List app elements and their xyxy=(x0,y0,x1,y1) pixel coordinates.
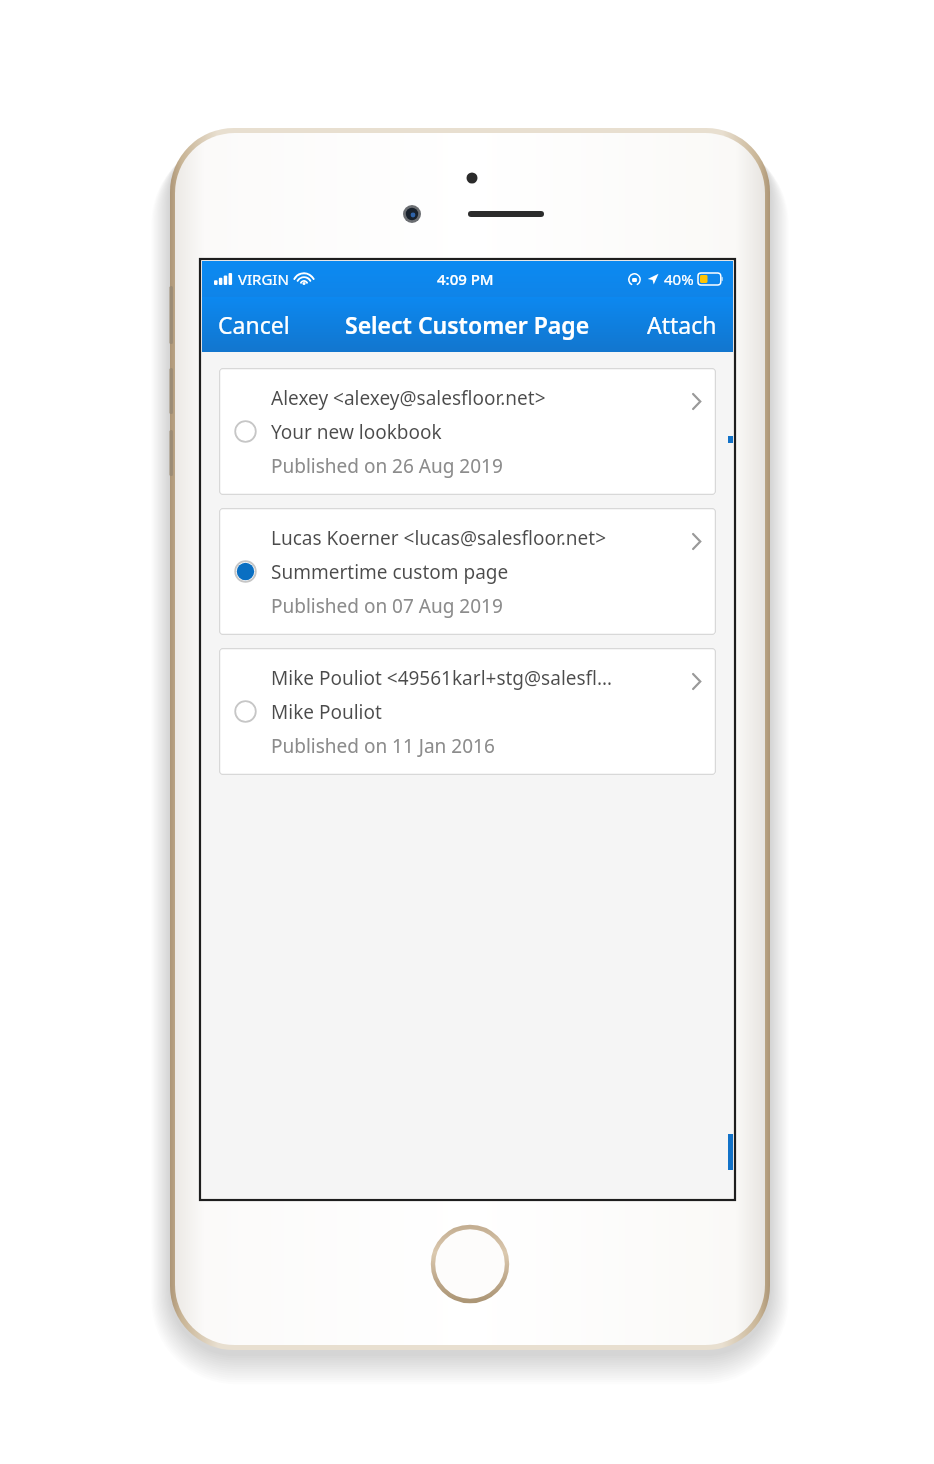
staticText: Published on 11 Jan 2016 xyxy=(271,733,495,759)
button[interactable]: Select page xyxy=(219,648,271,775)
staticText: VIRGIN xyxy=(238,269,289,289)
button[interactable]: Cancel xyxy=(202,301,302,348)
staticText: 4:09 PM xyxy=(437,269,494,289)
staticText: Lucas Koerner <lucas@salesfloor.net> xyxy=(271,525,607,551)
button[interactable]: Select page xyxy=(219,648,716,775)
staticText: Mike Pouliot <49561karl+stg@salesfl… xyxy=(271,665,613,691)
button[interactable]: Attach xyxy=(635,301,733,348)
staticText: 40% xyxy=(664,269,694,289)
staticText: Select Customer Page xyxy=(345,309,590,340)
button[interactable]: Selected page xyxy=(219,508,271,635)
staticText: Mike Pouliot xyxy=(271,699,382,725)
button[interactable]: Open page details xyxy=(676,648,716,775)
staticText: Cancel xyxy=(218,309,290,340)
button[interactable]: Select page xyxy=(219,368,271,495)
button[interactable]: Select page xyxy=(219,368,716,495)
staticText: Published on 07 Aug 2019 xyxy=(271,593,503,619)
staticText: Summertime custom page xyxy=(271,559,509,585)
button[interactable]: Open page details xyxy=(676,368,716,495)
button[interactable]: Selected page xyxy=(219,508,716,635)
staticText: Published on 26 Aug 2019 xyxy=(271,453,503,479)
staticText: Attach xyxy=(647,309,717,340)
button[interactable]: Open page details xyxy=(676,508,716,635)
staticText: Alexey <alexey@salesfloor.net> xyxy=(271,385,546,411)
staticText: Your new lookbook xyxy=(271,419,442,445)
